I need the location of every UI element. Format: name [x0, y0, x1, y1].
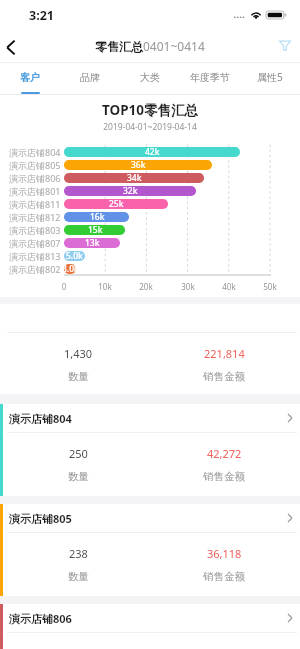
staticText: 50k — [259, 281, 281, 292]
staticText: 0 — [53, 281, 75, 292]
staticText: 10k — [94, 281, 116, 292]
staticText: 演示店铺806 — [9, 611, 72, 626]
staticText: 演示店铺804 — [9, 146, 61, 158]
staticText: 演示店铺804 — [9, 411, 72, 426]
staticText: 5.0k — [66, 250, 83, 262]
staticText: 演示店铺806 — [9, 172, 61, 184]
staticText: 演示店铺812 — [9, 211, 61, 223]
button[interactable]: 演示店铺804 — [5, 404, 297, 432]
button[interactable]: Back — [0, 28, 21, 63]
staticText: 数量 — [68, 570, 89, 583]
staticText: 20k — [135, 281, 157, 292]
staticText: 30k — [177, 281, 199, 292]
staticText: 238 — [69, 546, 88, 561]
staticText: 1,430 — [64, 346, 93, 361]
staticText: 36k — [131, 159, 146, 171]
staticText: 演示店铺805 — [9, 511, 72, 526]
button[interactable]: 品牌 — [60, 63, 120, 95]
staticText: 221,814 — [204, 346, 245, 361]
staticText: 演示店铺811 — [9, 198, 61, 210]
staticText: 13k — [85, 237, 100, 249]
staticText: 演示店铺805 — [9, 159, 61, 171]
staticText: 0401~0414 — [143, 38, 205, 54]
staticText: 32k — [123, 185, 138, 197]
staticText: 品牌 — [80, 71, 100, 84]
staticText: 年度季节 — [190, 71, 230, 84]
button[interactable]: Filter — [270, 28, 300, 63]
staticText: 3.0k — [62, 263, 79, 275]
staticText: TOP10零售汇总 — [0, 101, 300, 119]
staticText: 数量 — [68, 370, 89, 383]
staticText: 16k — [90, 211, 105, 223]
staticText: 销售金额 — [203, 570, 245, 583]
staticText: 42,272 — [207, 446, 242, 461]
staticText: 40k — [218, 281, 240, 292]
staticText: 演示店铺813 — [9, 250, 61, 262]
staticText: 零售汇总 — [95, 39, 143, 54]
staticText: 演示店铺807 — [9, 237, 61, 249]
button[interactable]: 大类 — [120, 63, 180, 95]
staticText: 演示店铺802 — [9, 263, 61, 275]
button[interactable]: 演示店铺806 — [5, 604, 297, 632]
staticText: 2019-04-01~2019-04-14 — [0, 121, 300, 133]
staticText: 25k — [109, 198, 124, 210]
staticText: 销售金额 — [203, 370, 245, 383]
staticText: 42k — [145, 146, 160, 158]
staticText: 属性5 — [257, 70, 283, 84]
staticText: 36,118 — [207, 546, 242, 561]
button[interactable]: 演示店铺805 — [5, 504, 297, 532]
staticText: 34k — [127, 172, 142, 184]
staticText: 3:21 — [29, 7, 54, 24]
button[interactable]: 客户 — [0, 63, 60, 95]
staticText: 大类 — [140, 71, 160, 84]
button[interactable]: 年度季节 — [180, 63, 240, 95]
staticText: 15k — [88, 224, 103, 236]
staticText: 客户 — [20, 71, 40, 84]
staticText: 销售金额 — [203, 470, 245, 483]
staticText: 数量 — [68, 470, 89, 483]
staticText: 250 — [69, 446, 88, 461]
staticText: 演示店铺803 — [9, 224, 61, 236]
staticText: 演示店铺801 — [9, 185, 61, 197]
button[interactable]: 属性5 — [240, 63, 300, 95]
